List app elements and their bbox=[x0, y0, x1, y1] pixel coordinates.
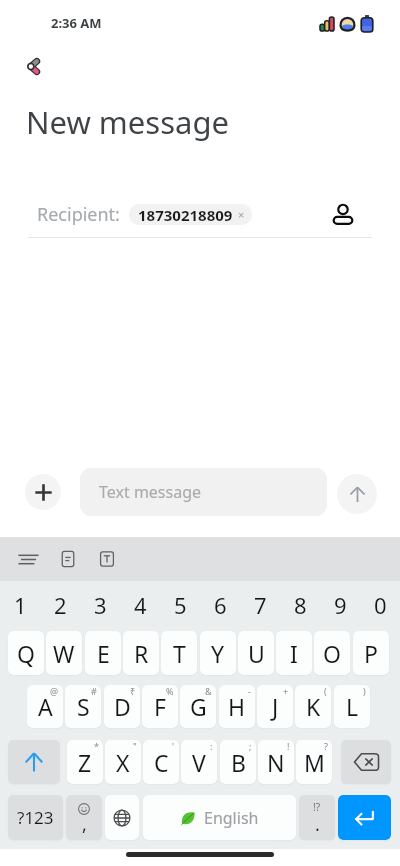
button[interactable]: Switch language bbox=[105, 795, 139, 840]
staticText: × bbox=[238, 207, 245, 222]
button[interactable]: Enter bbox=[338, 795, 391, 840]
staticText: M bbox=[304, 747, 325, 778]
staticText: K bbox=[306, 691, 321, 722]
staticText: 2:36 AM bbox=[51, 14, 102, 32]
button[interactable]: 9 bbox=[320, 582, 360, 627]
staticText: Y bbox=[211, 638, 225, 669]
staticText: Text message bbox=[99, 481, 202, 503]
button[interactable]: Symbols bbox=[8, 795, 63, 840]
staticText: A bbox=[38, 691, 53, 722]
staticText: J bbox=[272, 691, 279, 722]
button[interactable]: Choose contact bbox=[327, 198, 359, 230]
button[interactable]: W bbox=[46, 631, 82, 675]
staticText: ( bbox=[324, 685, 327, 697]
staticText: # bbox=[91, 685, 97, 697]
staticText: + bbox=[283, 685, 289, 697]
staticText: : bbox=[210, 740, 213, 752]
staticText: ! bbox=[287, 740, 290, 752]
button[interactable]: Text message bbox=[80, 468, 327, 516]
button[interactable]: R bbox=[123, 631, 159, 675]
staticText: 4 bbox=[134, 590, 147, 620]
staticText: , bbox=[82, 812, 87, 837]
staticText: T bbox=[173, 638, 186, 669]
staticText: ; bbox=[249, 740, 252, 752]
button[interactable]: I bbox=[276, 631, 312, 675]
button[interactable]: Back bbox=[17, 50, 49, 82]
staticText: H bbox=[228, 691, 246, 722]
staticText: @ bbox=[50, 685, 59, 697]
staticText: 3 bbox=[94, 590, 107, 620]
button[interactable]: Send bbox=[337, 474, 377, 514]
button[interactable]: 18730218809 bbox=[129, 204, 252, 225]
staticText: * bbox=[94, 740, 99, 752]
button[interactable]: S bbox=[65, 685, 101, 728]
staticText: ) bbox=[363, 685, 366, 697]
button[interactable]: Q bbox=[8, 631, 44, 675]
staticText: 1 bbox=[14, 590, 27, 620]
button[interactable]: 8 bbox=[280, 582, 320, 627]
staticText: D bbox=[114, 691, 131, 722]
button[interactable]: X bbox=[105, 740, 141, 784]
button[interactable]: K bbox=[295, 685, 331, 728]
staticText: ₹ bbox=[130, 685, 136, 697]
button[interactable]: D bbox=[104, 685, 140, 728]
staticText: E bbox=[97, 638, 110, 669]
button[interactable]: O bbox=[314, 631, 350, 675]
staticText: N bbox=[267, 747, 285, 778]
button[interactable]: H bbox=[219, 685, 255, 728]
button[interactable]: 0 bbox=[360, 582, 400, 627]
button[interactable]: Space bbox=[143, 795, 296, 840]
button[interactable]: V bbox=[181, 740, 217, 784]
button[interactable]: B bbox=[220, 740, 256, 784]
staticText: 6 bbox=[214, 590, 227, 620]
button[interactable]: U bbox=[238, 631, 274, 675]
button[interactable]: 1 bbox=[0, 582, 40, 627]
staticText: 0 bbox=[374, 590, 387, 620]
button[interactable]: J bbox=[257, 685, 293, 728]
staticText: R bbox=[134, 638, 149, 669]
button[interactable]: 5 bbox=[160, 582, 200, 627]
staticText: ? bbox=[324, 740, 328, 752]
staticText: 2 bbox=[54, 590, 67, 620]
staticText: W bbox=[53, 638, 75, 669]
button[interactable]: Comma bbox=[66, 795, 102, 840]
button[interactable]: Backspace bbox=[341, 740, 391, 784]
button[interactable]: N bbox=[258, 740, 294, 784]
staticText: 9 bbox=[334, 590, 347, 620]
button[interactable]: C bbox=[143, 740, 179, 784]
button[interactable]: F bbox=[142, 685, 178, 728]
button[interactable]: 3 bbox=[80, 582, 120, 627]
button[interactable]: L bbox=[334, 685, 370, 728]
staticText: B bbox=[231, 747, 246, 778]
button[interactable]: G bbox=[180, 685, 216, 728]
staticText: New message bbox=[26, 101, 229, 143]
button[interactable]: 4 bbox=[120, 582, 160, 627]
button[interactable]: Clipboard bbox=[55, 546, 81, 572]
staticText: . bbox=[315, 812, 320, 837]
staticText: & bbox=[205, 685, 212, 697]
button[interactable]: E bbox=[85, 631, 121, 675]
button[interactable]: Shift bbox=[8, 740, 60, 784]
staticText: ' bbox=[172, 740, 175, 752]
button[interactable]: T bbox=[161, 631, 197, 675]
button[interactable]: Z bbox=[67, 740, 103, 784]
staticText: C bbox=[154, 747, 169, 778]
staticText: !? bbox=[313, 800, 321, 814]
button[interactable]: P bbox=[353, 631, 389, 675]
staticText: 8 bbox=[294, 590, 307, 620]
staticText: O bbox=[323, 638, 341, 669]
button[interactable]: 7 bbox=[240, 582, 280, 627]
button[interactable]: Keyboard menu bbox=[15, 546, 41, 572]
button[interactable]: 6 bbox=[200, 582, 240, 627]
staticText: P bbox=[364, 638, 378, 669]
button[interactable]: A bbox=[27, 685, 63, 728]
button[interactable]: Period bbox=[299, 795, 335, 840]
button[interactable]: 2 bbox=[40, 582, 80, 627]
staticText: Recipient: bbox=[37, 202, 120, 227]
button[interactable]: Add attachment bbox=[25, 474, 61, 510]
button[interactable]: M bbox=[296, 740, 332, 784]
staticText: X bbox=[116, 747, 130, 778]
button[interactable]: Y bbox=[200, 631, 236, 675]
staticText: S bbox=[77, 691, 90, 722]
button[interactable]: Text editing bbox=[94, 546, 120, 572]
